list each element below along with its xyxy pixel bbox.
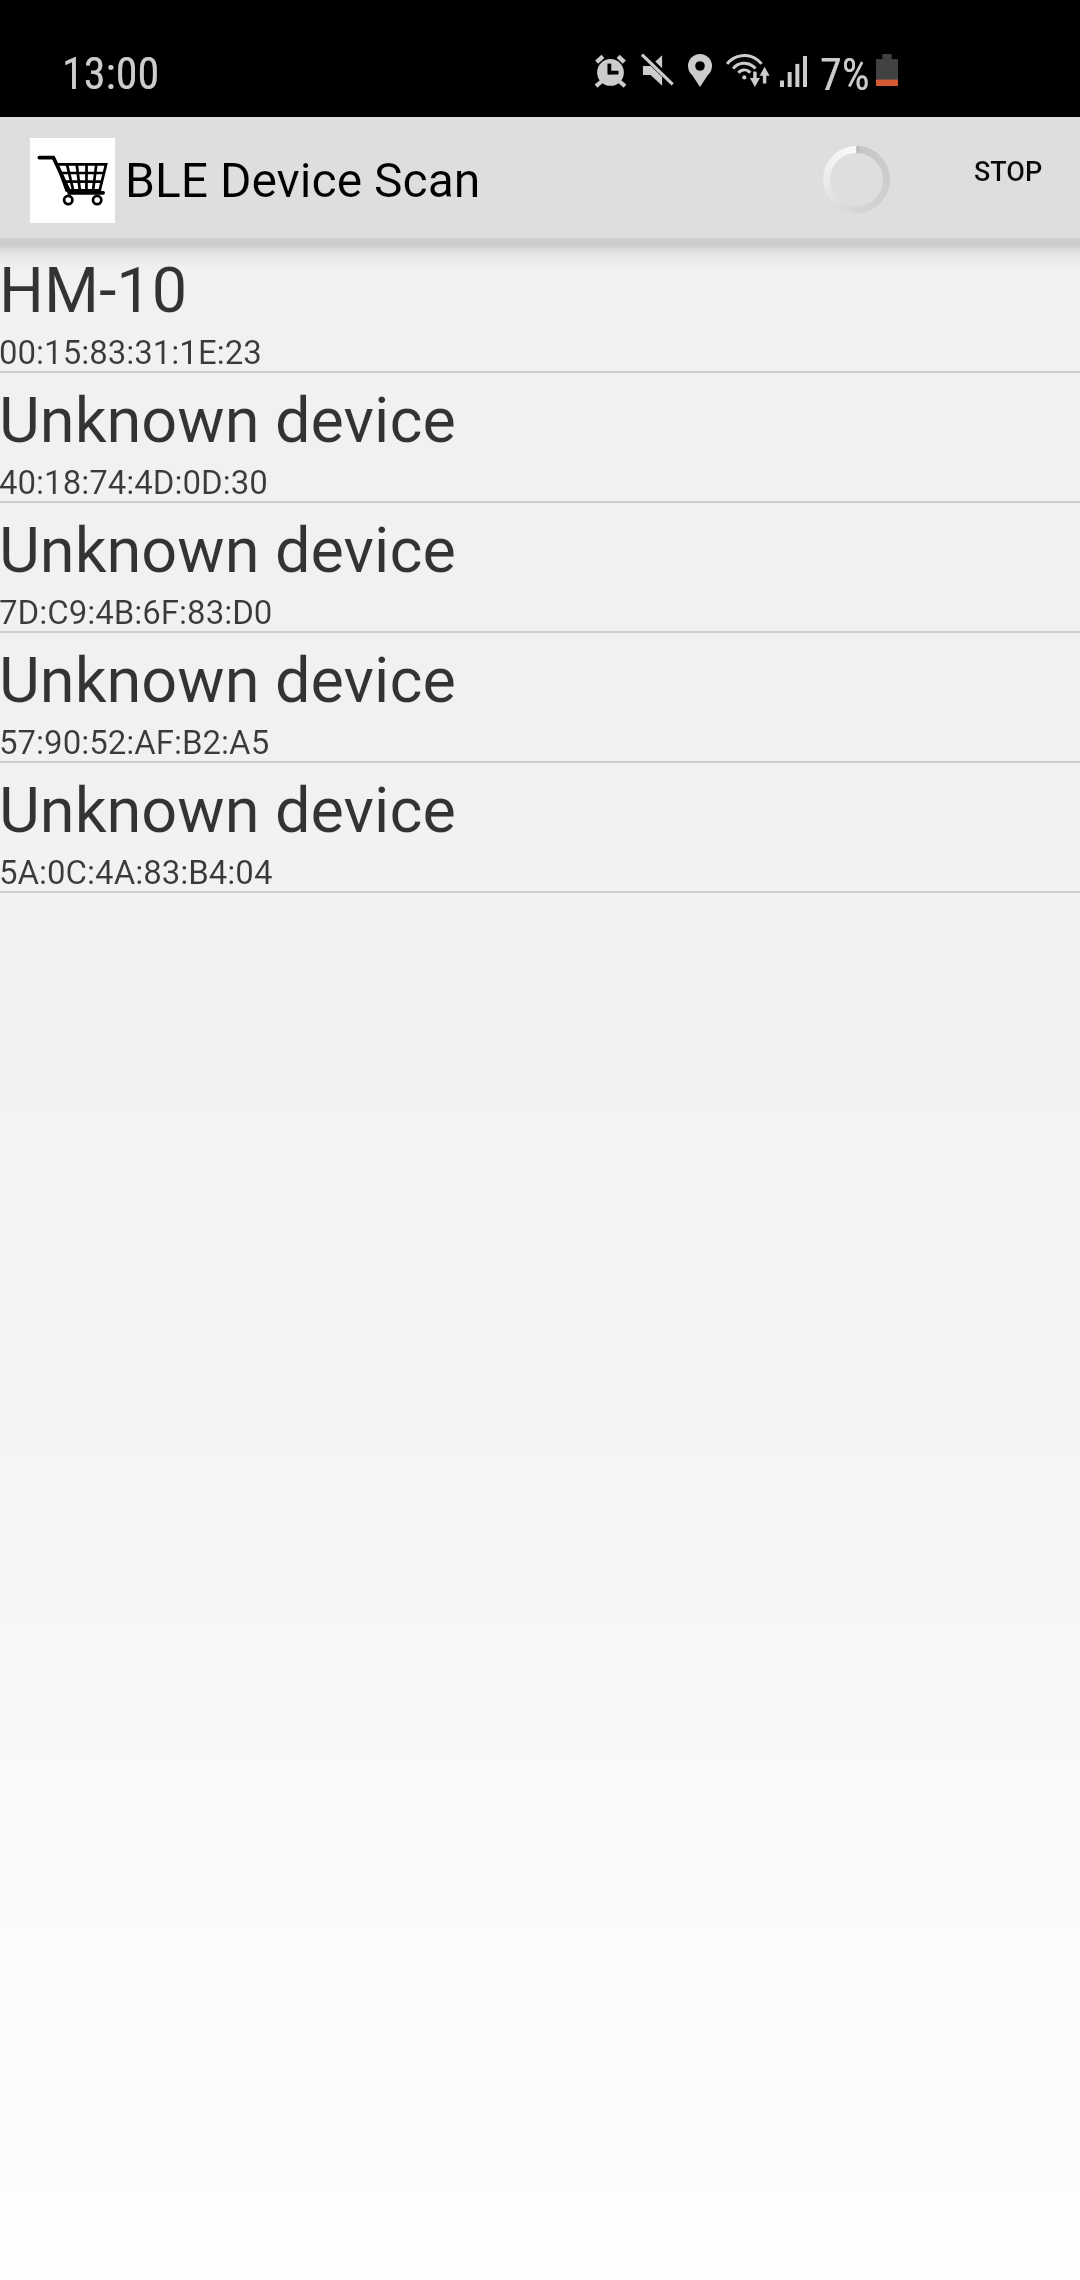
- button[interactable]: HM-10: [0, 243, 1080, 373]
- staticText: 13:00: [62, 48, 160, 100]
- other: Scanning: [823, 146, 890, 213]
- button[interactable]: Unknown device: [0, 373, 1080, 503]
- staticText: 5A:0C:4A:83:B4:04: [0, 853, 273, 892]
- staticText: 7D:C9:4B:6F:83:D0: [0, 593, 273, 632]
- staticText: 7%: [820, 49, 870, 101]
- button[interactable]: STOP: [956, 120, 1061, 223]
- staticText: 57:90:52:AF:B2:A5: [0, 723, 270, 762]
- button[interactable]: App icon: [30, 138, 115, 223]
- staticText: Unknown device: [0, 774, 456, 848]
- staticText: Unknown device: [0, 644, 456, 718]
- staticText: BLE Device Scan: [125, 152, 481, 208]
- button[interactable]: Unknown device: [0, 633, 1080, 763]
- button[interactable]: Unknown device: [0, 763, 1080, 893]
- staticText: Unknown device: [0, 384, 456, 458]
- staticText: 00:15:83:31:1E:23: [0, 333, 262, 372]
- staticText: 40:18:74:4D:0D:30: [0, 463, 268, 502]
- staticText: Unknown device: [0, 514, 456, 588]
- staticText: HM-10: [0, 254, 188, 328]
- staticText: STOP: [974, 156, 1043, 188]
- button[interactable]: Unknown device: [0, 503, 1080, 633]
